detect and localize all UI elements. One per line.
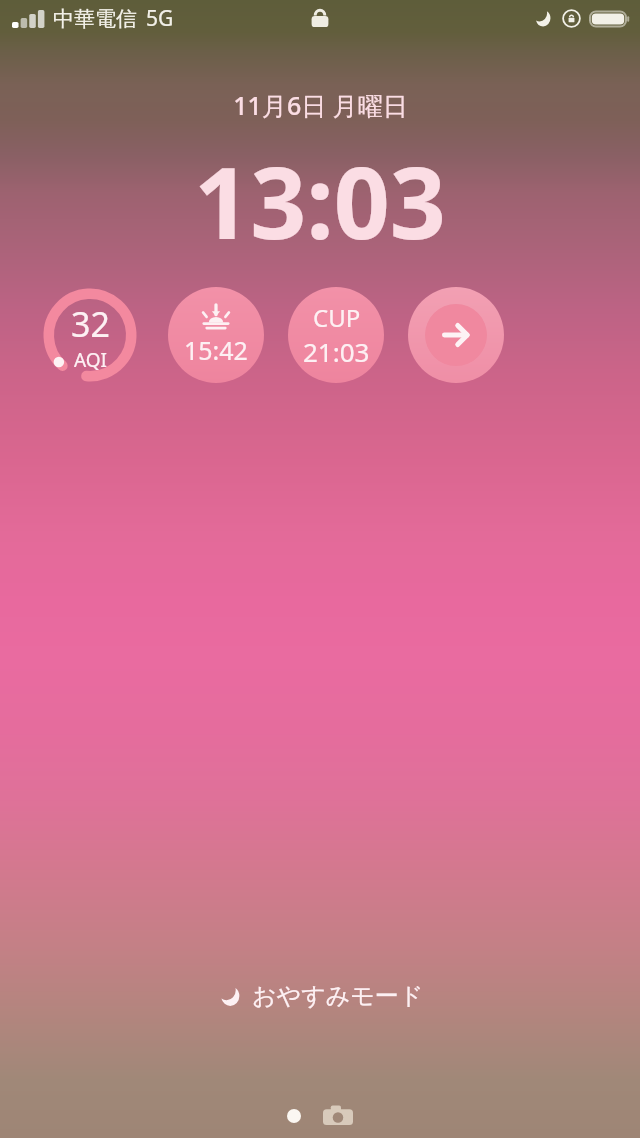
other: Locked (310, 6, 330, 30)
staticText: 15:42 (184, 333, 248, 367)
staticText: おやすみモード (252, 981, 424, 1011)
other: Rotation lock (561, 8, 582, 29)
staticText: CUP (313, 301, 361, 334)
button[interactable]: CUP 21:03 (288, 287, 384, 383)
staticText: AQI (74, 347, 108, 373)
staticText: 32 (71, 301, 110, 347)
button[interactable]: Camera (323, 1104, 353, 1128)
button[interactable]: Air quality 32 AQI (36, 281, 144, 389)
other: Do not disturb (532, 8, 553, 29)
button[interactable]: おやすみモード (209, 977, 432, 1015)
button[interactable]: Page indicator (287, 1109, 301, 1123)
staticText: 11月6日 月曜日 (233, 88, 408, 122)
button[interactable]: Next (408, 287, 504, 383)
staticText: 中華電信 (53, 6, 137, 32)
staticText: 5G (146, 4, 174, 33)
staticText: 21:03 (303, 334, 370, 369)
staticText: 13:03 (194, 134, 446, 267)
button[interactable]: Sunset 15:42 (168, 287, 264, 383)
